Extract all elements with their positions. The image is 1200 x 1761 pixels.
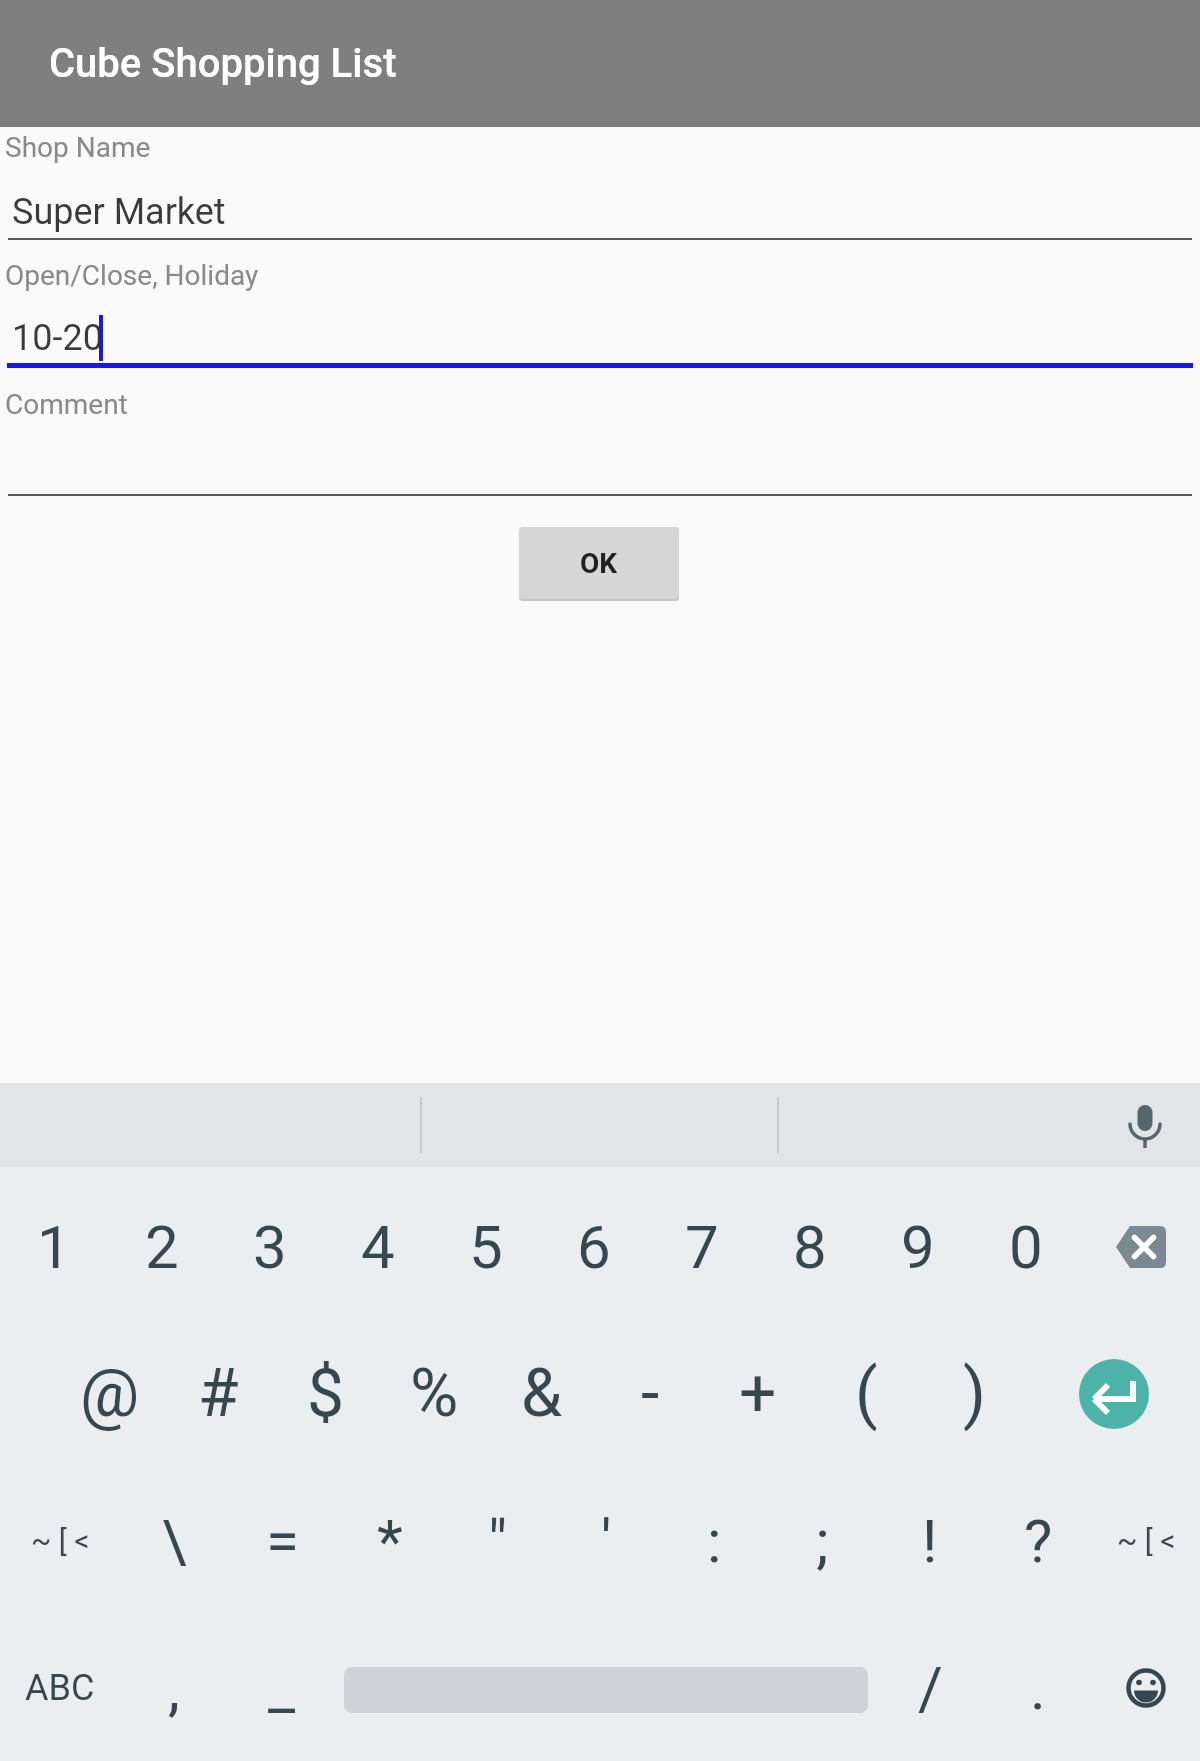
button[interactable]: ABC bbox=[0, 1614, 120, 1761]
staticText: / bbox=[918, 1653, 943, 1723]
staticText: ) bbox=[963, 1355, 986, 1432]
staticText: % bbox=[410, 1355, 459, 1432]
button[interactable]: - bbox=[596, 1320, 704, 1467]
staticText: : bbox=[707, 1506, 722, 1576]
button[interactable]: 6 bbox=[540, 1173, 648, 1320]
button[interactable]: ~ [ < bbox=[0, 1467, 120, 1614]
staticText: ! bbox=[922, 1506, 938, 1576]
staticText: ~ [ < bbox=[31, 1523, 90, 1558]
staticText: ? bbox=[1024, 1506, 1053, 1576]
staticText: \ bbox=[162, 1506, 187, 1576]
staticText: + bbox=[739, 1355, 777, 1432]
button[interactable]: 3 bbox=[216, 1173, 324, 1320]
staticText: 4 bbox=[361, 1212, 395, 1282]
button[interactable]: ; bbox=[768, 1467, 876, 1614]
button[interactable]: : bbox=[660, 1467, 768, 1614]
staticText: Shop Name bbox=[5, 131, 151, 164]
button[interactable] bbox=[1090, 1083, 1200, 1167]
button[interactable]: 7 bbox=[648, 1173, 756, 1320]
staticText: 7 bbox=[685, 1212, 719, 1282]
button[interactable] bbox=[336, 1614, 876, 1761]
button[interactable]: * bbox=[336, 1467, 444, 1614]
button[interactable]: 1 bbox=[0, 1173, 108, 1320]
staticText: ' bbox=[601, 1506, 612, 1576]
staticText: , bbox=[168, 1653, 180, 1723]
staticText: _ bbox=[268, 1653, 296, 1723]
staticText: ABC bbox=[25, 1667, 95, 1709]
button[interactable]: . bbox=[984, 1614, 1092, 1761]
staticText: & bbox=[521, 1355, 563, 1432]
button[interactable]: # bbox=[164, 1320, 272, 1467]
staticText: 6 bbox=[577, 1212, 611, 1282]
staticText: * bbox=[377, 1506, 403, 1576]
staticText: @ bbox=[80, 1355, 140, 1432]
button[interactable]: 0 bbox=[972, 1173, 1080, 1320]
staticText: ~ [ < bbox=[1117, 1523, 1176, 1558]
staticText: OK bbox=[580, 547, 618, 580]
button[interactable] bbox=[1028, 1320, 1200, 1467]
button[interactable]: ? bbox=[984, 1467, 1092, 1614]
staticText: $ bbox=[307, 1355, 345, 1432]
staticText: 3 bbox=[253, 1212, 287, 1282]
button[interactable]: ) bbox=[920, 1320, 1028, 1467]
staticText: 0 bbox=[1009, 1212, 1043, 1282]
button[interactable] bbox=[1092, 1614, 1200, 1761]
button[interactable]: = bbox=[228, 1467, 336, 1614]
button[interactable]: + bbox=[704, 1320, 812, 1467]
staticText: Comment bbox=[5, 388, 128, 421]
button[interactable]: 5 bbox=[432, 1173, 540, 1320]
button[interactable]: $ bbox=[272, 1320, 380, 1467]
staticText: ( bbox=[855, 1355, 878, 1432]
button[interactable]: @ bbox=[56, 1320, 164, 1467]
button[interactable]: \ bbox=[120, 1467, 228, 1614]
button[interactable]: " bbox=[444, 1467, 552, 1614]
button[interactable]: % bbox=[380, 1320, 488, 1467]
staticText: Super Market bbox=[12, 191, 226, 233]
button[interactable]: & bbox=[488, 1320, 596, 1467]
staticText: . bbox=[1030, 1653, 1046, 1723]
staticText: 5 bbox=[469, 1212, 503, 1282]
staticText: ; bbox=[816, 1506, 829, 1576]
staticText: 1 bbox=[37, 1212, 71, 1282]
staticText: Cube Shopping List bbox=[49, 40, 397, 87]
button[interactable]: ! bbox=[876, 1467, 984, 1614]
button[interactable]: ( bbox=[812, 1320, 920, 1467]
button[interactable]: OK bbox=[519, 527, 679, 599]
staticText: 2 bbox=[145, 1212, 179, 1282]
staticText: " bbox=[488, 1506, 508, 1576]
button[interactable]: 4 bbox=[324, 1173, 432, 1320]
staticText: # bbox=[198, 1355, 239, 1432]
button[interactable]: _ bbox=[228, 1614, 336, 1761]
staticText: = bbox=[266, 1506, 299, 1576]
button[interactable]: 8 bbox=[756, 1173, 864, 1320]
button[interactable]: ~ [ < bbox=[1092, 1467, 1200, 1614]
button[interactable]: / bbox=[876, 1614, 984, 1761]
staticText: 10-20 bbox=[12, 317, 103, 359]
staticText: - bbox=[641, 1355, 660, 1432]
button[interactable] bbox=[1080, 1173, 1200, 1320]
button[interactable]: 2 bbox=[108, 1173, 216, 1320]
button[interactable]: 9 bbox=[864, 1173, 972, 1320]
staticText: 8 bbox=[793, 1212, 827, 1282]
button[interactable]: , bbox=[120, 1614, 228, 1761]
button[interactable]: ' bbox=[552, 1467, 660, 1614]
staticText: Open/Close, Holiday bbox=[5, 259, 259, 292]
staticText: 9 bbox=[901, 1212, 935, 1282]
